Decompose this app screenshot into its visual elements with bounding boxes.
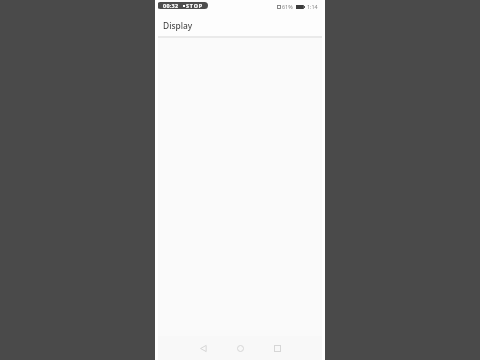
staticText: STOP — [186, 2, 203, 9]
button[interactable]: Home — [231, 339, 250, 358]
button[interactable]: Back — [194, 339, 213, 358]
staticText: Display — [163, 20, 193, 31]
staticText: 61% — [282, 3, 293, 10]
button[interactable]: Stop screen recording — [157, 2, 208, 9]
button[interactable]: Recents — [268, 339, 287, 358]
staticText: 00:32 — [163, 2, 179, 9]
staticText: 1:14 — [307, 3, 318, 10]
